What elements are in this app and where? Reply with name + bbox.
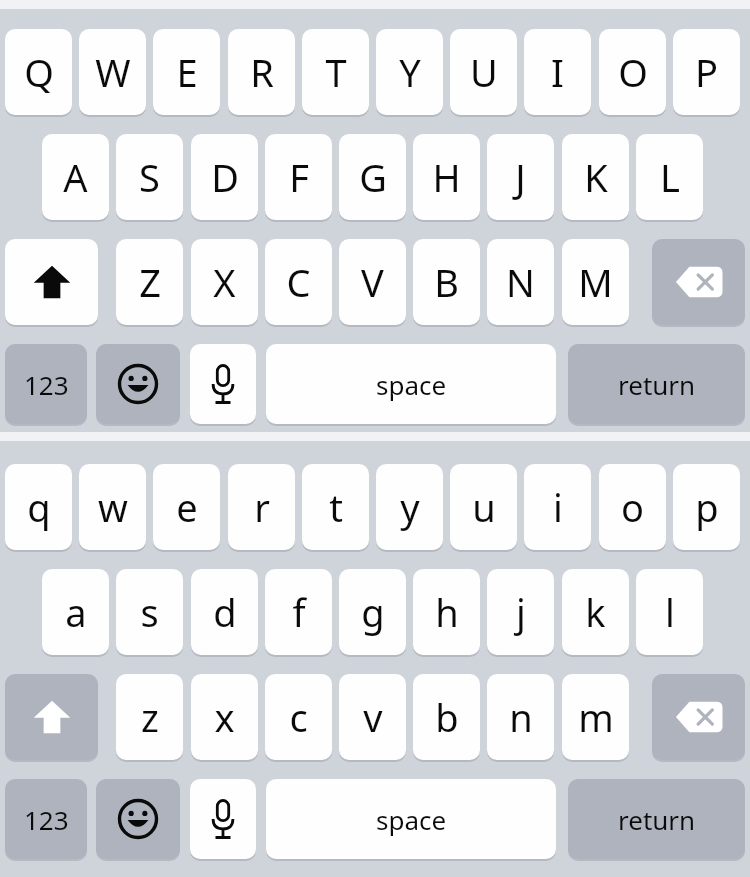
staticText: O: [618, 46, 648, 98]
button[interactable]: g: [339, 569, 406, 655]
button[interactable]: v: [339, 674, 406, 760]
staticText: b: [435, 691, 459, 743]
button[interactable]: q: [5, 464, 72, 550]
button[interactable]: W: [79, 29, 146, 115]
button[interactable]: h: [413, 569, 480, 655]
staticText: t: [329, 481, 343, 533]
button[interactable]: x: [191, 674, 258, 760]
button[interactable]: i: [524, 464, 591, 550]
button[interactable]: Emoji: [96, 779, 180, 859]
staticText: A: [63, 151, 88, 203]
button[interactable]: Backspace: [652, 674, 745, 760]
button[interactable]: T: [302, 29, 369, 115]
button[interactable]: r: [228, 464, 295, 550]
button[interactable]: F: [265, 134, 332, 220]
staticText: N: [506, 256, 535, 308]
button[interactable]: R: [228, 29, 295, 115]
button[interactable]: m: [562, 674, 629, 760]
button[interactable]: P: [673, 29, 740, 115]
staticText: v: [363, 691, 383, 743]
button[interactable]: z: [116, 674, 183, 760]
button[interactable]: s: [116, 569, 183, 655]
button[interactable]: J: [487, 134, 554, 220]
staticText: z: [141, 691, 159, 743]
staticText: n: [509, 691, 533, 743]
staticText: H: [432, 151, 461, 203]
staticText: space: [376, 367, 447, 402]
button[interactable]: p: [673, 464, 740, 550]
button[interactable]: G: [339, 134, 406, 220]
button[interactable]: H: [413, 134, 480, 220]
button[interactable]: n: [487, 674, 554, 760]
button[interactable]: K: [562, 134, 629, 220]
staticText: p: [695, 481, 719, 533]
button[interactable]: M: [562, 239, 629, 325]
button[interactable]: Shift: [5, 674, 98, 760]
staticText: return: [618, 367, 696, 402]
staticText: e: [176, 481, 198, 533]
button[interactable]: f: [265, 569, 332, 655]
button[interactable]: 123: [5, 779, 87, 859]
button[interactable]: c: [265, 674, 332, 760]
staticText: I: [551, 46, 564, 98]
staticText: l: [665, 586, 675, 638]
staticText: f: [292, 586, 306, 638]
button[interactable]: Q: [5, 29, 72, 115]
button[interactable]: O: [599, 29, 666, 115]
staticText: E: [176, 46, 198, 98]
button[interactable]: a: [42, 569, 109, 655]
button[interactable]: E: [153, 29, 220, 115]
button[interactable]: Dictate: [190, 344, 256, 424]
staticText: k: [585, 586, 606, 638]
button[interactable]: y: [376, 464, 443, 550]
button[interactable]: Emoji: [96, 344, 180, 424]
staticText: g: [361, 586, 385, 638]
staticText: B: [434, 256, 459, 308]
button[interactable]: U: [450, 29, 517, 115]
button[interactable]: L: [636, 134, 703, 220]
button[interactable]: Z: [116, 239, 183, 325]
button[interactable]: S: [116, 134, 183, 220]
staticText: y: [400, 481, 420, 533]
button[interactable]: X: [191, 239, 258, 325]
button[interactable]: b: [413, 674, 480, 760]
button[interactable]: k: [562, 569, 629, 655]
button[interactable]: I: [524, 29, 591, 115]
staticText: J: [515, 151, 526, 203]
button[interactable]: D: [191, 134, 258, 220]
staticText: C: [286, 256, 311, 308]
button[interactable]: B: [413, 239, 480, 325]
button[interactable]: return: [568, 344, 745, 424]
button[interactable]: 123: [5, 344, 87, 424]
staticText: j: [516, 586, 526, 638]
button[interactable]: space: [266, 779, 556, 859]
button[interactable]: u: [450, 464, 517, 550]
button[interactable]: Y: [376, 29, 443, 115]
staticText: m: [578, 691, 614, 743]
staticText: r: [254, 481, 270, 533]
button[interactable]: w: [79, 464, 146, 550]
button[interactable]: C: [265, 239, 332, 325]
staticText: D: [211, 151, 239, 203]
button[interactable]: space: [266, 344, 556, 424]
staticText: return: [618, 802, 696, 837]
button[interactable]: Backspace: [652, 239, 745, 325]
button[interactable]: return: [568, 779, 745, 859]
button[interactable]: d: [191, 569, 258, 655]
button[interactable]: e: [153, 464, 220, 550]
staticText: h: [435, 586, 459, 638]
button[interactable]: j: [487, 569, 554, 655]
staticText: W: [95, 46, 131, 98]
staticText: x: [214, 691, 235, 743]
button[interactable]: o: [599, 464, 666, 550]
button[interactable]: V: [339, 239, 406, 325]
staticText: Y: [399, 46, 421, 98]
button[interactable]: Dictate: [190, 779, 256, 859]
button[interactable]: Shift: [5, 239, 98, 325]
button[interactable]: l: [636, 569, 703, 655]
button[interactable]: N: [487, 239, 554, 325]
button[interactable]: t: [302, 464, 369, 550]
staticText: X: [213, 256, 236, 308]
button[interactable]: A: [42, 134, 109, 220]
staticText: G: [359, 151, 387, 203]
